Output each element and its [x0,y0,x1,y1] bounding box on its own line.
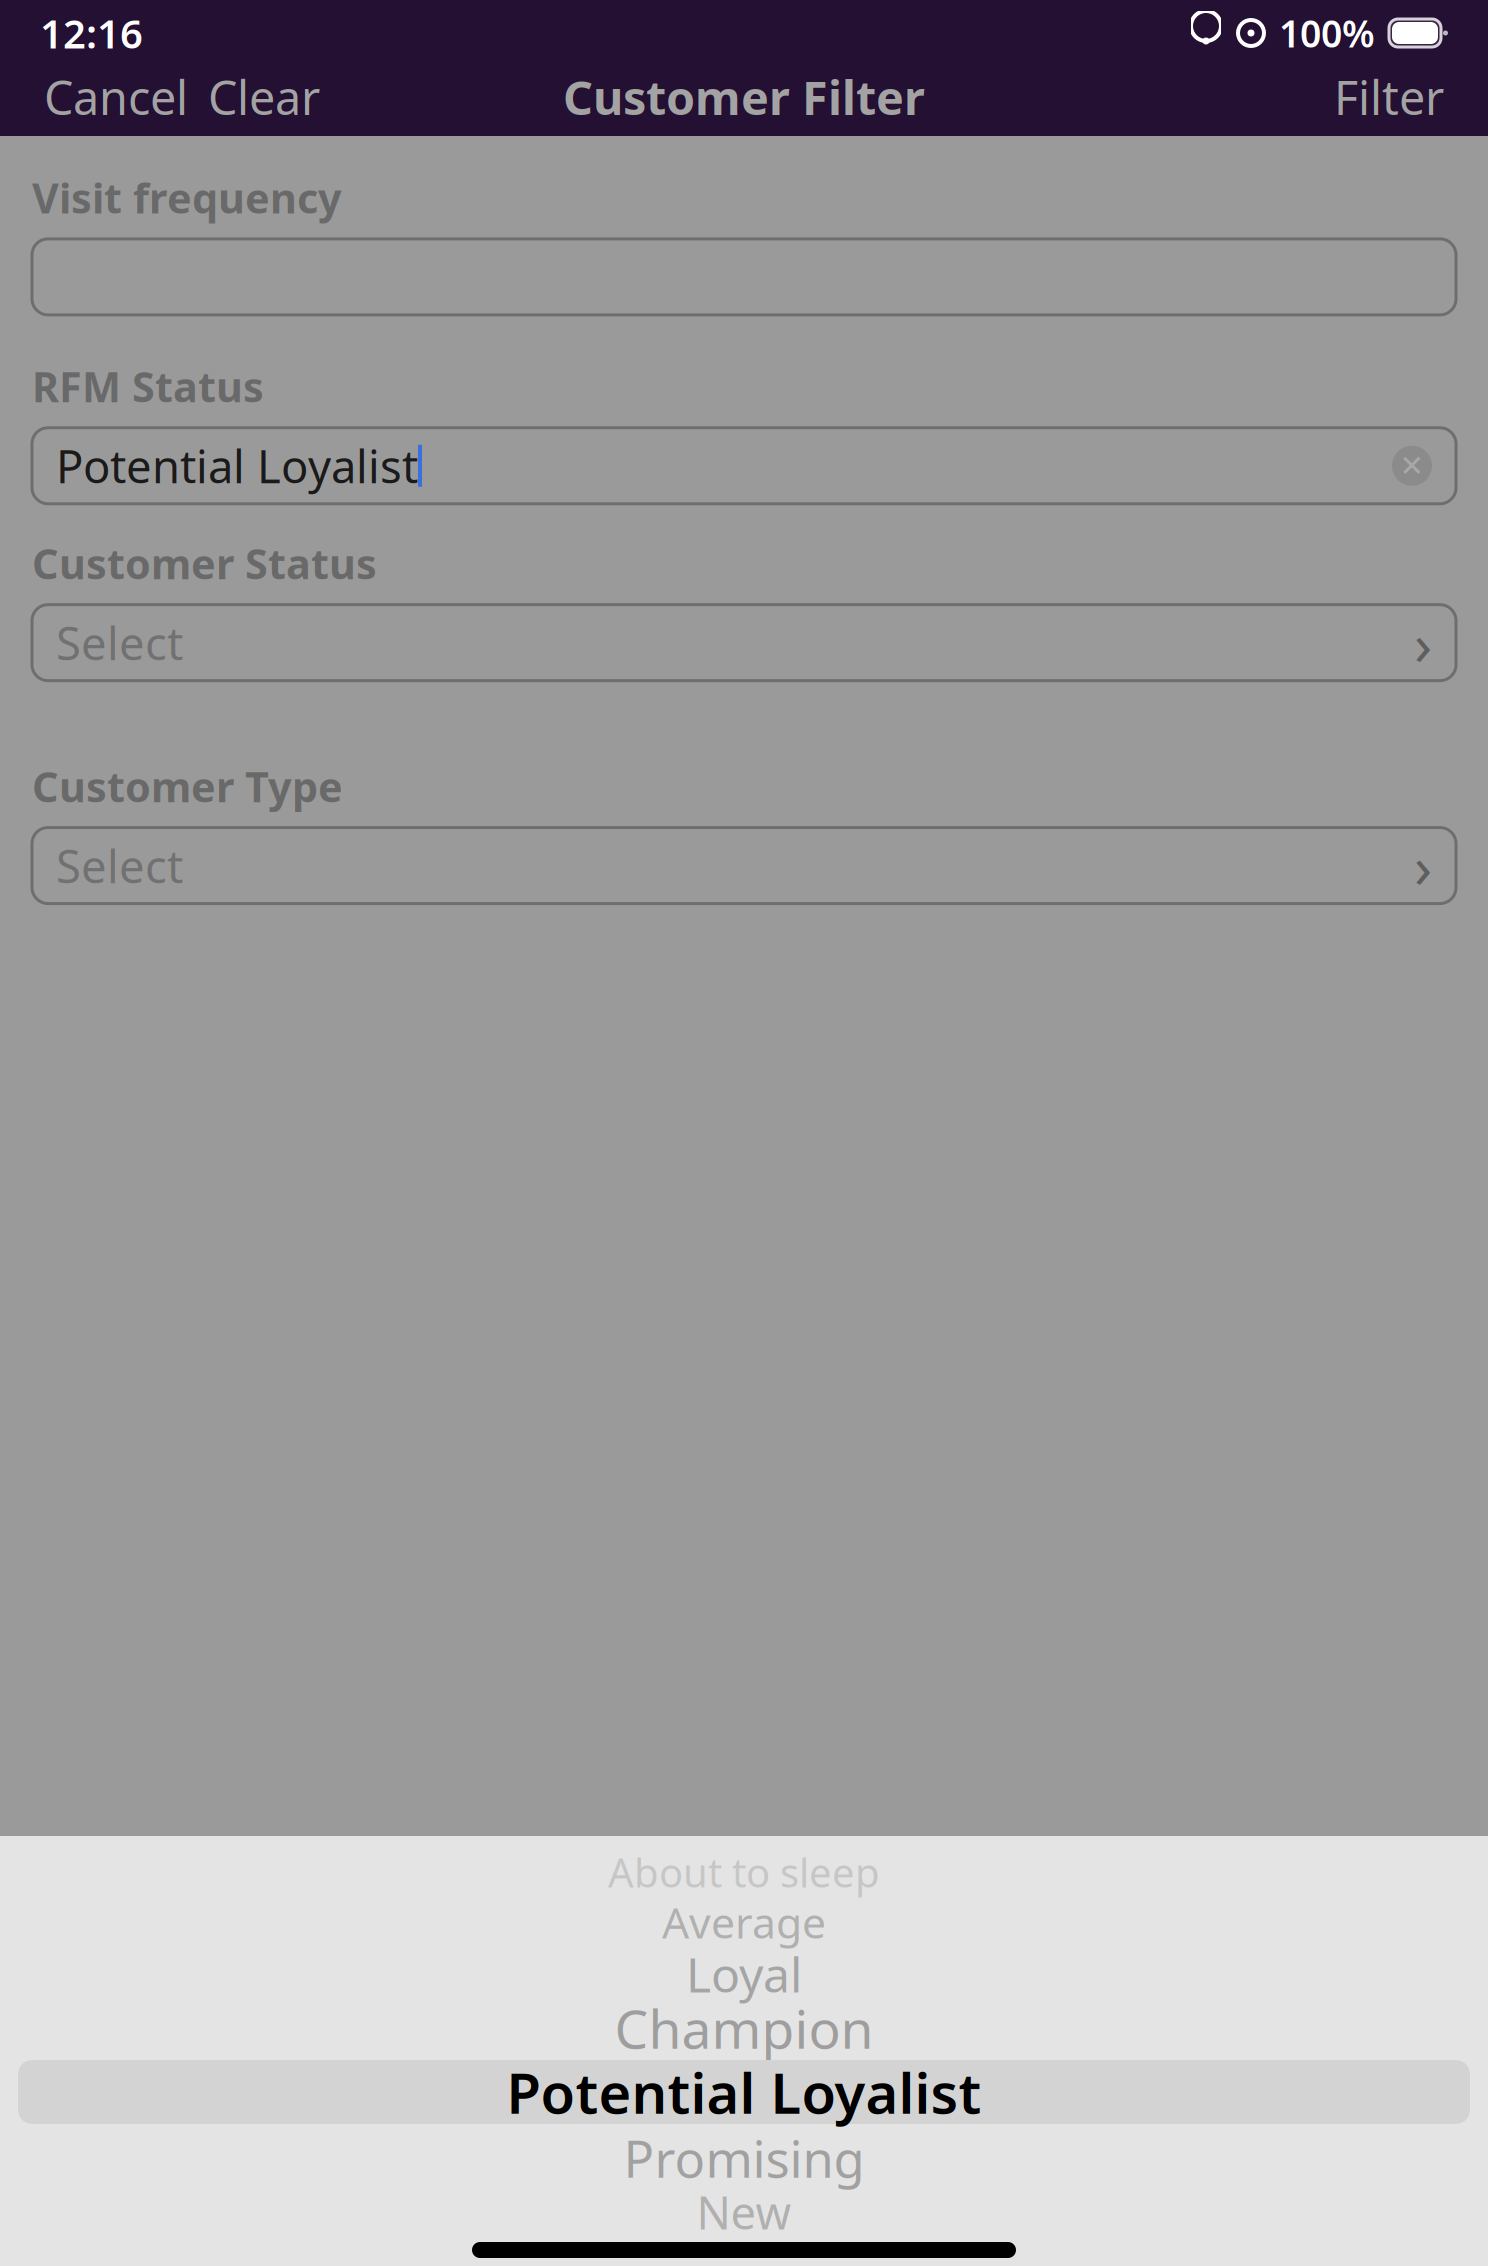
staticText: ✕ [1399,449,1424,482]
staticText: RFM Status [32,359,264,414]
button[interactable]: New [0,2190,1488,2234]
staticText: Visit frequency [32,170,342,225]
button[interactable]: Potential Loyalist [32,428,1456,504]
button[interactable]: Clear [198,52,330,142]
staticText: Potential Loyalist [56,436,418,496]
staticText: › [1414,604,1432,682]
staticText: New [696,2182,791,2242]
staticText: Customer Status [32,536,377,591]
button[interactable]: Champion [0,2006,1488,2050]
button[interactable]: Promising [0,2136,1488,2180]
staticText: About to sleep [608,1845,880,1898]
staticText: Promising [623,2124,864,2192]
staticText: Potential Loyalist [506,2055,981,2129]
staticText: Customer Type [32,759,343,814]
staticText: Loyal [686,1942,802,2006]
button[interactable]: Filter [1324,52,1454,142]
staticText: 100% [1279,8,1375,58]
button[interactable]: Select [32,605,1456,681]
staticText: 12:16 [40,6,143,59]
button[interactable]: Loyal [0,1952,1488,1996]
button[interactable] [32,239,1456,315]
button[interactable]: Potential Loyalist [0,2060,1488,2124]
staticText: › [1414,827,1432,904]
staticText: Champion [614,1993,873,2063]
staticText: Filter [1334,66,1444,128]
button[interactable]: Select [32,828,1456,904]
staticText: Average [662,1894,826,1950]
staticText: Cancel [44,66,188,128]
staticText: Select [56,835,183,896]
staticText: Select [56,613,183,673]
button[interactable]: Cancel [34,52,198,142]
button[interactable]: About to sleep [0,1850,1488,1894]
button[interactable]: Average [0,1900,1488,1944]
staticText: Customer Filter [563,66,925,128]
staticText: Clear [208,66,320,128]
